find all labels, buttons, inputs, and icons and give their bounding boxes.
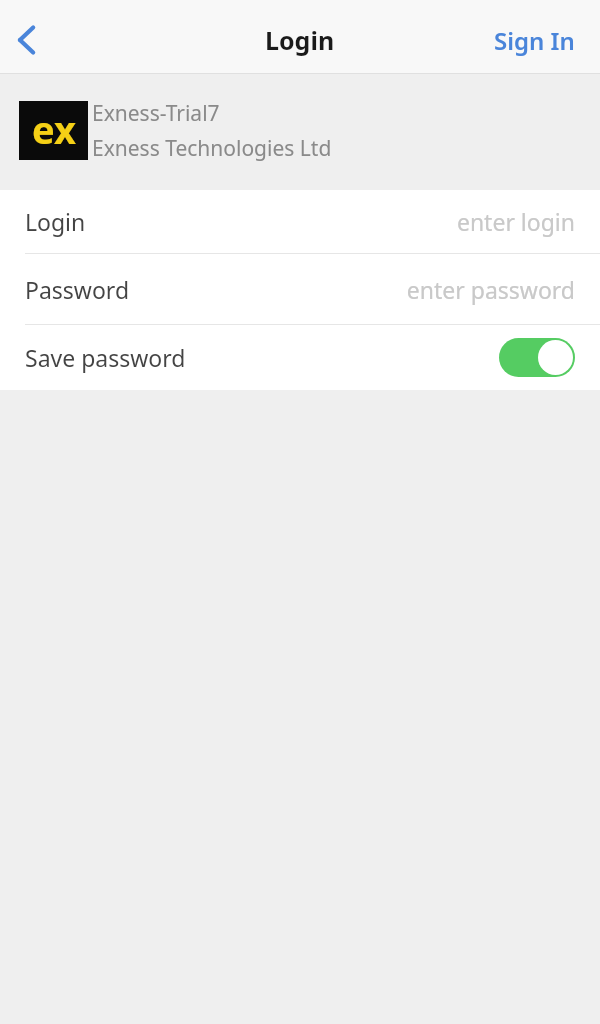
staticText: Login	[25, 206, 86, 237]
staticText: Sign In	[494, 24, 575, 57]
button[interactable]: Login	[0, 190, 600, 253]
staticText: Save password	[25, 342, 186, 373]
staticText: Login	[265, 23, 335, 57]
button[interactable]: Save password toggle, on	[499, 338, 575, 377]
button[interactable]: Sign In	[494, 10, 575, 70]
button[interactable]: Back	[0, 10, 54, 70]
staticText: Password	[25, 274, 130, 305]
staticText: enter password	[406, 274, 575, 305]
button[interactable]: ex	[0, 74, 600, 190]
staticText: enter login	[456, 206, 575, 237]
staticText: Exness Technologies Ltd	[92, 134, 332, 163]
staticText: Exness-Trial7	[92, 99, 220, 128]
staticText: ex	[32, 103, 76, 155]
button[interactable]: Password	[0, 254, 600, 324]
button[interactable]: Save password	[0, 325, 600, 390]
